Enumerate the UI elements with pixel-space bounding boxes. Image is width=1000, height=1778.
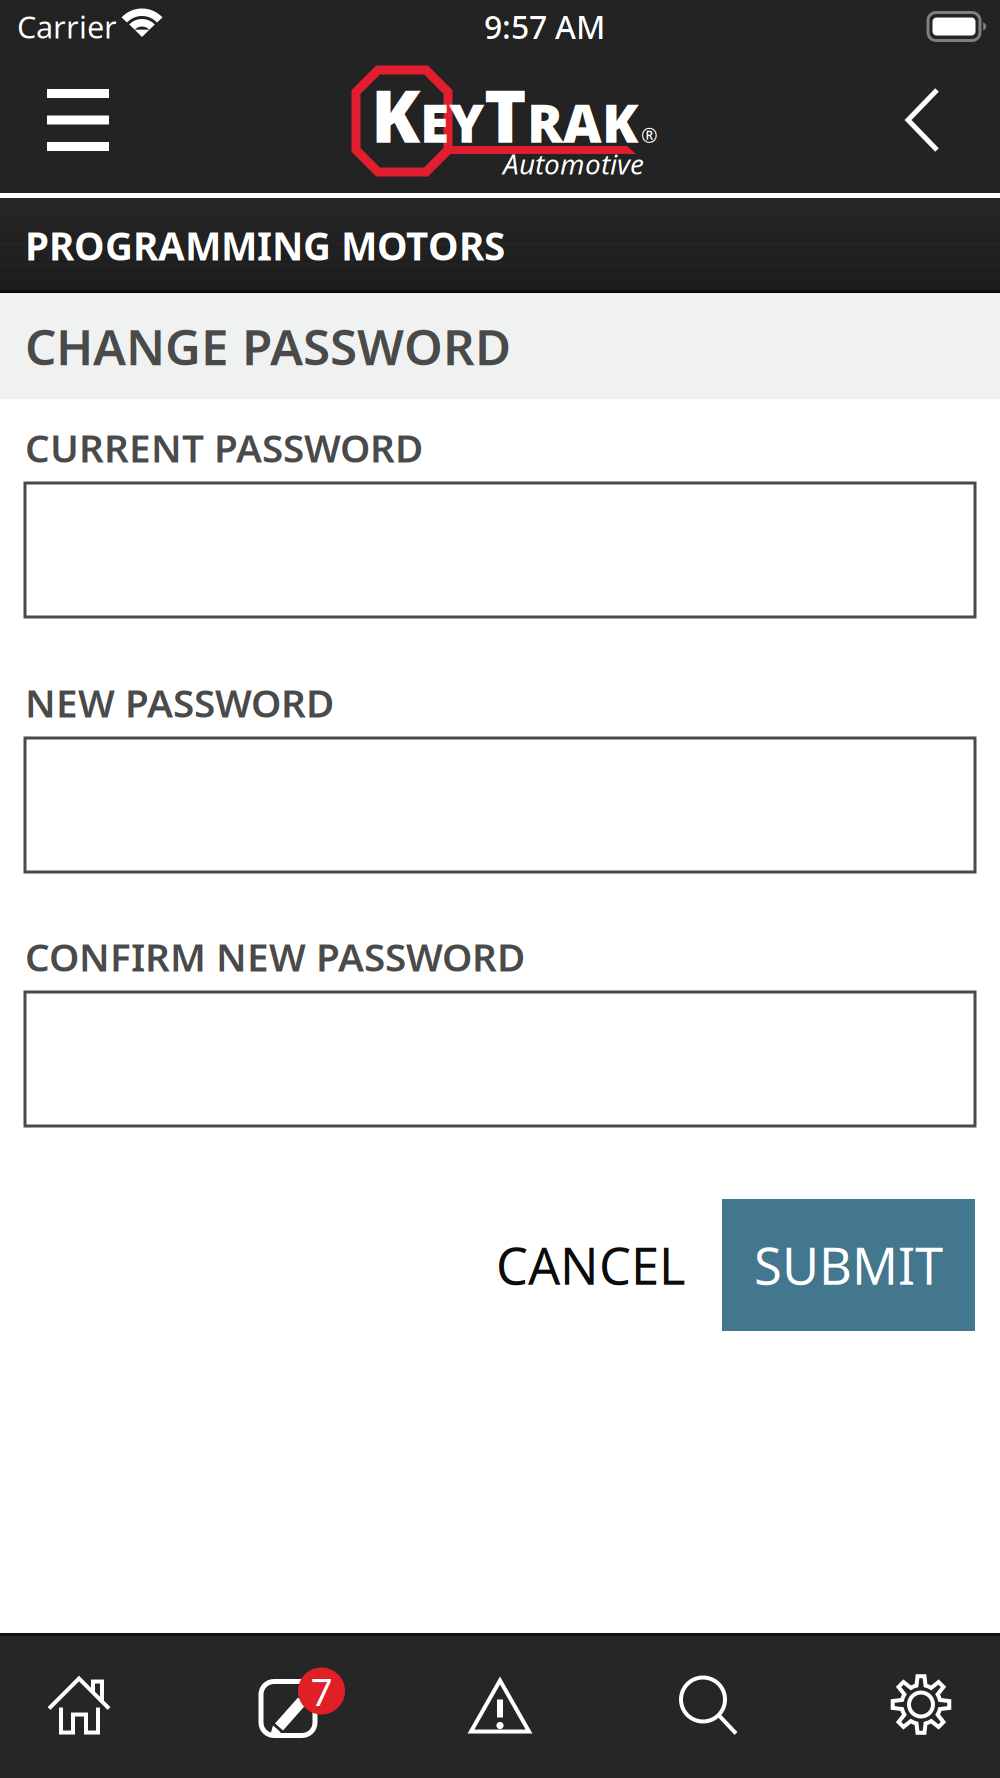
- button[interactable]: Notes, 7 new: [200, 1633, 400, 1778]
- button[interactable]: Back: [888, 53, 1000, 193]
- staticText: K: [371, 67, 420, 163]
- button[interactable]: Search: [600, 1633, 800, 1778]
- staticText: NEW PASSWORD: [25, 677, 334, 728]
- staticText: Automotive: [503, 145, 644, 182]
- staticText: 7: [310, 1665, 332, 1717]
- staticText: T: [484, 67, 527, 163]
- staticText: CANCEL: [496, 1231, 686, 1299]
- staticText: CONFIRM NEW PASSWORD: [25, 931, 525, 982]
- staticText: RAK: [527, 87, 639, 157]
- button[interactable]: Settings: [800, 1633, 1000, 1778]
- staticText: EY: [420, 87, 484, 157]
- button[interactable]: Home: [0, 1633, 200, 1778]
- button[interactable]: Menu: [0, 53, 110, 193]
- button[interactable]: CANCEL: [460, 1199, 722, 1331]
- staticText: SUBMIT: [754, 1231, 943, 1299]
- staticText: PROGRAMMING MOTORS: [25, 220, 505, 271]
- staticText: 9:57 AM: [484, 5, 605, 48]
- staticText: Carrier: [17, 6, 117, 47]
- staticText: CURRENT PASSWORD: [25, 422, 423, 473]
- button[interactable]: SUBMIT: [722, 1199, 975, 1331]
- button[interactable]: Alerts: [400, 1633, 600, 1778]
- staticText: ®: [641, 122, 658, 148]
- staticText: CHANGE PASSWORD: [25, 313, 511, 379]
